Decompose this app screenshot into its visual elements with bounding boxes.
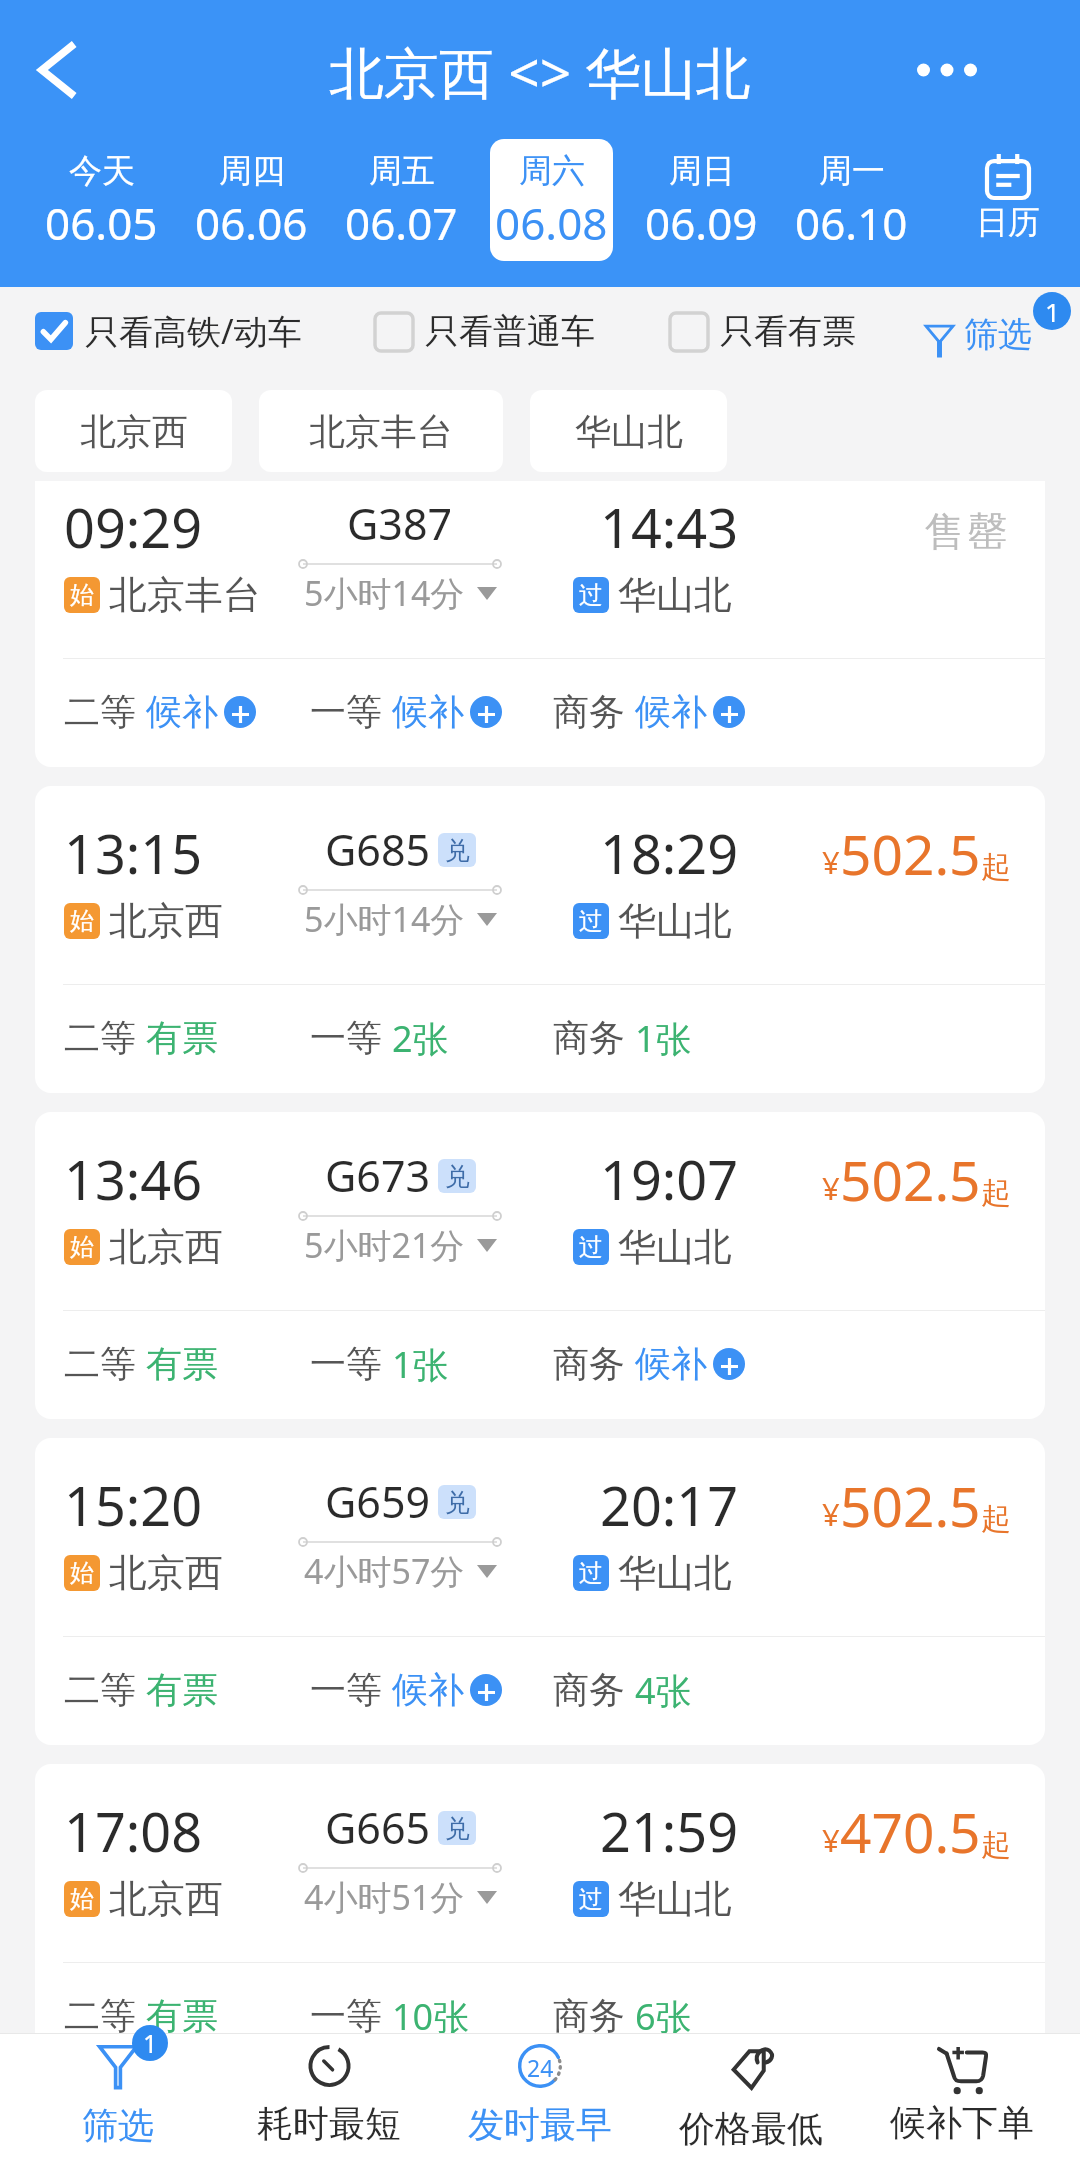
staticText: 兑 — [445, 1813, 470, 1844]
staticText: 有票 — [146, 1341, 218, 1386]
button[interactable]: 周六 — [490, 139, 613, 261]
staticText: 北京西 <> 华山北 — [329, 34, 751, 109]
staticText: 日历 — [976, 202, 1040, 242]
staticText: 一等 — [310, 1993, 382, 2038]
button[interactable]: 只看高铁/动车 — [35, 308, 302, 354]
staticText: 502.5 — [840, 1468, 981, 1543]
staticText: 北京西 — [109, 897, 223, 945]
staticText: ¥ — [822, 1167, 840, 1209]
staticText: 候补 — [392, 1667, 464, 1712]
staticText: G387 — [347, 494, 453, 553]
staticText: 13:15 — [64, 816, 203, 890]
staticText: 筛选 — [82, 2103, 154, 2148]
staticText: 一等 — [310, 689, 382, 734]
staticText: 1 — [1045, 294, 1060, 329]
staticText: 候补 — [635, 1341, 707, 1386]
staticText: 兑 — [445, 1487, 470, 1518]
staticText: 6张 — [635, 1992, 692, 2038]
staticText: 始 — [70, 906, 94, 936]
staticText: 华山北 — [618, 1875, 732, 1923]
button[interactable]: 1 — [13, 2033, 223, 2158]
button[interactable]: 13:46 — [35, 1112, 1045, 1419]
staticText: 周五 — [369, 150, 435, 192]
button[interactable]: 日历 — [931, 132, 1080, 268]
staticText: 华山北 — [618, 897, 732, 945]
button[interactable]: 只看普通车 — [375, 310, 595, 353]
staticText: 华山北 — [575, 409, 683, 454]
staticText: 北京西 — [80, 409, 188, 454]
button[interactable]: 候补下单 — [856, 2033, 1067, 2158]
staticText: 商务 — [553, 1667, 625, 1712]
staticText: 始 — [70, 1558, 94, 1588]
staticText: 起 — [981, 848, 1011, 886]
button[interactable]: 24 — [434, 2033, 645, 2158]
button[interactable]: 周四 — [190, 139, 313, 261]
button[interactable]: 北京西 — [35, 390, 232, 472]
staticText: 13:46 — [64, 1142, 203, 1216]
staticText: 北京丰台 — [109, 571, 261, 619]
staticText: 一等 — [310, 1015, 382, 1060]
button[interactable]: 周一 — [790, 139, 913, 261]
staticText: 19:07 — [600, 1142, 739, 1216]
staticText: 4张 — [635, 1666, 692, 1712]
staticText: 24 — [527, 2052, 554, 2083]
staticText: 09:29 — [64, 490, 203, 564]
staticText: 5小时21分 — [304, 1222, 465, 1268]
staticText: 北京西 — [109, 1875, 223, 1923]
staticText: 1张 — [392, 1340, 449, 1386]
button[interactable]: Back — [12, 24, 104, 116]
button[interactable]: 09:29 — [35, 481, 1045, 767]
staticText: 周六 — [519, 150, 585, 192]
staticText: 06.07 — [345, 193, 458, 253]
staticText: 北京西 — [109, 1223, 223, 1271]
button[interactable]: 筛选 — [926, 312, 1032, 356]
button[interactable]: 价格最低 — [645, 2033, 856, 2158]
staticText: 只看高铁/动车 — [85, 308, 302, 354]
button[interactable]: 北京丰台 — [259, 390, 503, 472]
staticText: G659 — [325, 1472, 431, 1531]
button[interactable]: 耗时最短 — [223, 2033, 434, 2158]
staticText: 过 — [579, 1232, 603, 1262]
staticText: 华山北 — [618, 1549, 732, 1597]
staticText: 17:08 — [64, 1794, 203, 1868]
button[interactable]: 华山北 — [530, 390, 727, 472]
button[interactable]: 17:08 — [35, 1764, 1045, 2071]
staticText: 候补 — [146, 689, 218, 734]
staticText: G685 — [325, 820, 431, 879]
staticText: 18:29 — [600, 816, 739, 890]
staticText: 502.5 — [840, 816, 981, 891]
staticText: 只看有票 — [720, 310, 856, 353]
button[interactable]: 今天 — [40, 139, 163, 261]
staticText: 06.10 — [795, 193, 908, 253]
staticText: 候补 — [635, 689, 707, 734]
button[interactable]: 只看有票 — [670, 310, 856, 353]
staticText: 二等 — [64, 1015, 136, 1060]
button[interactable]: 周五 — [340, 139, 463, 261]
staticText: 始 — [70, 1884, 94, 1914]
staticText: 过 — [579, 906, 603, 936]
button[interactable]: 周日 — [640, 139, 763, 261]
button[interactable]: 15:20 — [35, 1438, 1045, 1745]
staticText: 商务 — [553, 1993, 625, 2038]
staticText: ¥ — [822, 1819, 840, 1861]
staticText: 售罄 — [923, 506, 1009, 556]
staticText: 1 — [143, 2026, 158, 2060]
staticText: 06.09 — [645, 193, 758, 253]
staticText: 商务 — [553, 1341, 625, 1386]
button[interactable]: More options — [901, 24, 993, 116]
staticText: 始 — [70, 580, 94, 610]
staticText: 二等 — [64, 689, 136, 734]
staticText: G673 — [325, 1146, 431, 1205]
staticText: 起 — [981, 1174, 1011, 1212]
staticText: 只看普通车 — [425, 310, 595, 353]
staticText: 起 — [981, 1500, 1011, 1538]
staticText: 一等 — [310, 1341, 382, 1386]
staticText: 470.5 — [840, 1794, 981, 1869]
staticText: 有票 — [146, 1993, 218, 2038]
button[interactable]: 13:15 — [35, 786, 1045, 1093]
staticText: 筛选 — [964, 313, 1032, 356]
staticText: 二等 — [64, 1667, 136, 1712]
staticText: 华山北 — [618, 571, 732, 619]
staticText: 周一 — [819, 150, 885, 192]
staticText: 4小时57分 — [304, 1548, 465, 1594]
